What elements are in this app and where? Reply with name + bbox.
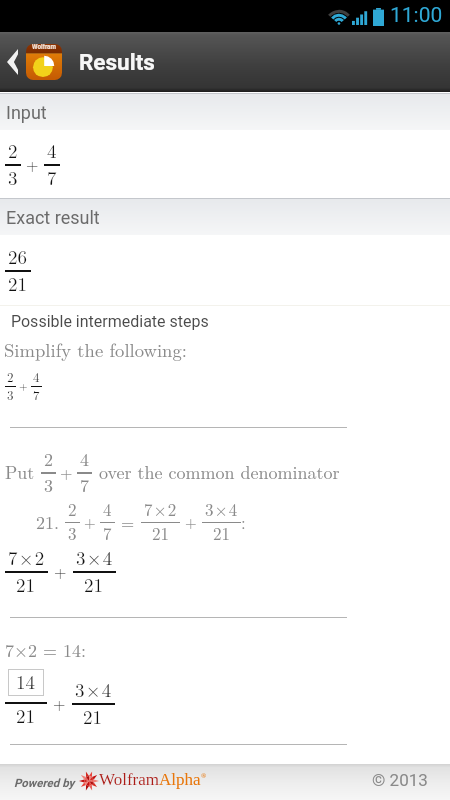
staticText: 3 × 4 bbox=[75, 676, 112, 703]
staticText: Input bbox=[6, 102, 47, 123]
staticText: 4 bbox=[33, 367, 40, 385]
staticText: Possible intermediate steps bbox=[11, 312, 209, 331]
staticText: 21 bbox=[152, 521, 169, 545]
staticText: Put bbox=[5, 459, 35, 485]
staticText: Simplify the following: bbox=[4, 336, 187, 362]
staticText: 21 bbox=[213, 521, 230, 545]
button[interactable]: Navigate up bbox=[0, 32, 62, 92]
staticText: 4 bbox=[47, 137, 57, 164]
staticText: Powered by bbox=[14, 776, 75, 789]
staticText: + bbox=[54, 560, 67, 583]
staticText: 2 bbox=[8, 137, 18, 164]
staticText: = bbox=[121, 510, 135, 534]
staticText: 7×2 = 14: bbox=[5, 637, 86, 663]
staticText: 21 bbox=[16, 702, 36, 729]
staticText: 7 bbox=[33, 385, 40, 403]
staticText: 21 bbox=[84, 571, 104, 598]
staticText: 4 bbox=[80, 446, 89, 472]
staticText: over the common denominator bbox=[99, 459, 340, 485]
staticText: 7 × 2 bbox=[144, 497, 177, 521]
staticText: 21 bbox=[8, 270, 28, 297]
staticText: 3 bbox=[68, 521, 77, 545]
staticText: 21 bbox=[83, 703, 103, 730]
staticText: : bbox=[241, 510, 246, 534]
staticText: + bbox=[84, 511, 96, 532]
staticText: + bbox=[185, 511, 197, 532]
staticText: 3 bbox=[7, 385, 14, 403]
staticText: 2 bbox=[7, 367, 14, 385]
staticText: 7 bbox=[47, 164, 57, 191]
staticText: 7 bbox=[80, 472, 89, 498]
staticText: ® bbox=[201, 772, 207, 780]
staticText: 7 bbox=[103, 521, 112, 545]
staticText: Alpha bbox=[159, 770, 201, 789]
staticText: Wolfram bbox=[99, 770, 159, 789]
staticText: 21. bbox=[36, 509, 60, 535]
staticText: © 2013 bbox=[372, 770, 428, 790]
staticText: 2 bbox=[44, 446, 53, 472]
staticText: + bbox=[53, 692, 66, 715]
staticText: 3 × 4 bbox=[76, 544, 113, 571]
staticText: 21 bbox=[16, 571, 36, 598]
staticText: + bbox=[19, 378, 28, 394]
staticText: 26 bbox=[8, 243, 28, 270]
staticText: Exact result bbox=[6, 207, 100, 228]
staticText: 7 × 2 bbox=[8, 544, 45, 571]
staticText: 3 bbox=[44, 472, 53, 498]
staticText: Wolfram bbox=[32, 44, 56, 50]
staticText: + bbox=[60, 461, 73, 484]
staticText: 2 bbox=[68, 497, 77, 521]
staticText: 11:00 bbox=[390, 3, 443, 28]
staticText: + bbox=[26, 153, 39, 176]
staticText: Results bbox=[79, 49, 155, 75]
staticText: 14 bbox=[16, 668, 36, 695]
staticText: 3 bbox=[8, 164, 18, 191]
staticText: 3 × 4 bbox=[205, 497, 238, 521]
staticText: 4 bbox=[103, 497, 112, 521]
